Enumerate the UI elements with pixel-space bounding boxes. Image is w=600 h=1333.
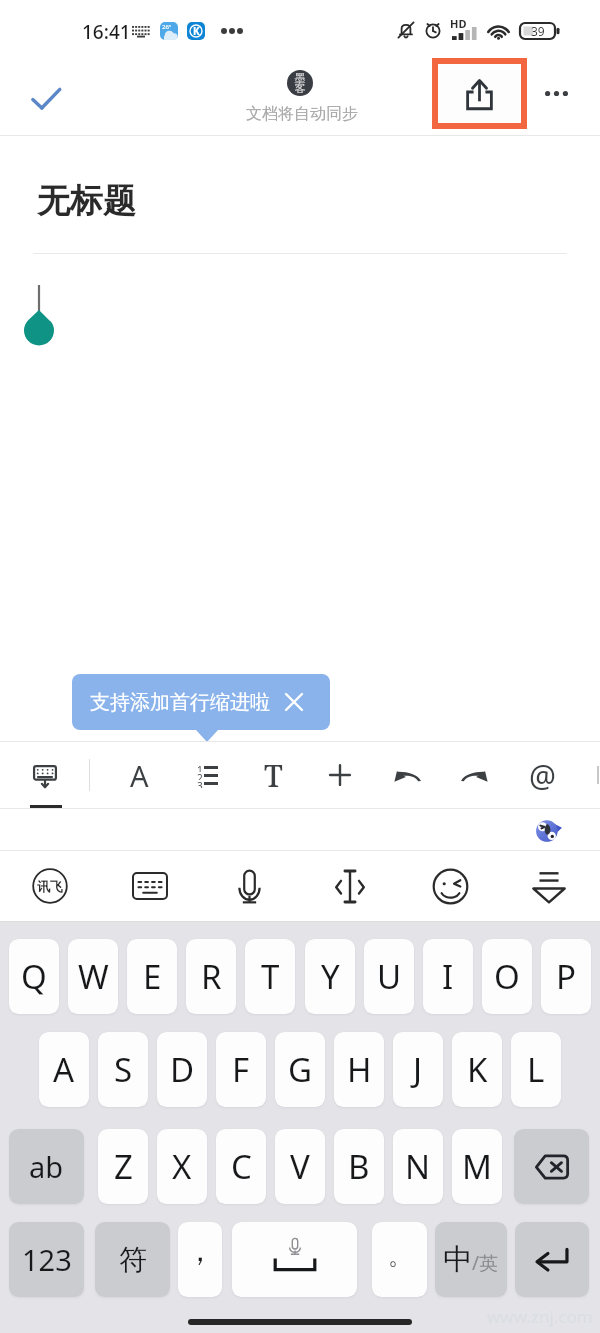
staticText: 16:41	[82, 19, 131, 45]
staticText: T	[261, 954, 280, 999]
staticText: 2	[197, 771, 203, 780]
button[interactable]: 。	[372, 1222, 427, 1297]
button[interactable]: ab	[9, 1129, 84, 1204]
staticText: O	[494, 954, 520, 999]
staticText: 3	[197, 779, 203, 788]
staticText: G	[288, 1047, 313, 1092]
button[interactable]: S	[98, 1032, 148, 1107]
staticText: 墨 客	[293, 71, 307, 95]
button[interactable]: T	[245, 939, 295, 1014]
staticText: ab	[29, 1147, 64, 1186]
button[interactable]: List	[174, 742, 240, 808]
button[interactable]: X	[157, 1129, 207, 1204]
button[interactable]: Hide	[515, 851, 583, 921]
button[interactable]: Font style	[106, 742, 172, 808]
staticText: ，	[185, 1232, 215, 1270]
button[interactable]: Space	[232, 1222, 357, 1297]
button[interactable]: C	[216, 1129, 266, 1204]
staticText: B	[348, 1144, 370, 1189]
staticText: 123	[22, 1240, 72, 1279]
button[interactable]: Enter	[515, 1222, 589, 1297]
staticText: P	[556, 954, 576, 999]
button[interactable]: Voice input	[215, 851, 283, 921]
staticText: A	[53, 1047, 75, 1092]
staticText: F	[232, 1047, 250, 1092]
button[interactable]: I	[423, 939, 473, 1014]
staticText: U	[377, 954, 402, 999]
staticText: 文档将自动同步	[246, 104, 358, 124]
button[interactable]: Account avatar	[287, 70, 313, 96]
staticText: K	[467, 1047, 488, 1092]
button[interactable]: More options	[534, 71, 578, 115]
staticText: S	[114, 1047, 133, 1092]
button[interactable]: Cursor	[316, 851, 384, 921]
staticText: N	[405, 1144, 431, 1189]
button[interactable]: E	[127, 939, 177, 1014]
staticText: 支持添加首行缩进啦	[90, 690, 270, 715]
button[interactable]: 123	[9, 1222, 84, 1297]
staticText: 26°	[162, 23, 172, 31]
button[interactable]: A	[39, 1032, 89, 1107]
staticText: 讯飞	[37, 878, 63, 894]
staticText: E	[143, 954, 162, 999]
staticText: @	[529, 755, 556, 796]
button[interactable]: Redo	[442, 742, 508, 808]
button[interactable]: 支持添加首行缩进啦	[72, 674, 330, 730]
button[interactable]: Hide keyboard	[12, 742, 78, 808]
staticText: 1	[197, 763, 203, 772]
button[interactable]: Keyboard	[116, 851, 184, 921]
button[interactable]: Done	[18, 71, 74, 127]
button[interactable]: M	[452, 1129, 502, 1204]
staticText: D	[170, 1047, 195, 1092]
staticText: L	[527, 1047, 545, 1092]
staticText: 39	[531, 23, 545, 39]
staticText: HD	[450, 16, 467, 31]
button[interactable]: L	[511, 1032, 561, 1107]
staticText: V	[290, 1144, 310, 1189]
button[interactable]: Y	[305, 939, 355, 1014]
button[interactable]: G	[275, 1032, 325, 1107]
staticText: R	[201, 954, 222, 999]
button[interactable]: K	[452, 1032, 502, 1107]
button[interactable]: H	[334, 1032, 384, 1107]
staticText: M	[462, 1144, 492, 1189]
staticText: 无标题	[37, 180, 136, 222]
button[interactable]: Q	[9, 939, 59, 1014]
staticText: H	[347, 1047, 372, 1092]
button[interactable]: V	[275, 1129, 325, 1204]
button[interactable]: W	[68, 939, 118, 1014]
button[interactable]: N	[393, 1129, 443, 1204]
staticText: 符	[119, 1242, 147, 1277]
button[interactable]: Input method	[16, 851, 84, 921]
button[interactable]: Z	[98, 1129, 148, 1204]
button[interactable]: R	[186, 939, 236, 1014]
button[interactable]: Backspace	[514, 1129, 589, 1204]
button[interactable]: D	[157, 1032, 207, 1107]
button[interactable]: O	[482, 939, 532, 1014]
button[interactable]: Undo	[374, 742, 440, 808]
button[interactable]: J	[393, 1032, 443, 1107]
staticText: www.znj.com	[487, 1305, 593, 1328]
staticText: X	[172, 1144, 192, 1189]
button[interactable]: U	[364, 939, 414, 1014]
button[interactable]: Insert	[307, 742, 373, 808]
button[interactable]: P	[541, 939, 591, 1014]
button[interactable]: Share	[438, 64, 521, 123]
staticText: W	[78, 954, 109, 999]
button[interactable]: ，	[178, 1222, 222, 1297]
button[interactable]: B	[334, 1129, 384, 1204]
staticText: C	[231, 1144, 252, 1189]
button[interactable]: 符	[95, 1222, 170, 1297]
staticText: K	[193, 24, 200, 38]
staticText: /英	[472, 1250, 499, 1276]
staticText: Y	[321, 954, 340, 999]
staticText: T	[264, 755, 283, 796]
button[interactable]: Text format	[240, 742, 306, 808]
button[interactable]: F	[216, 1032, 266, 1107]
button[interactable]: Chinese English toggle	[435, 1222, 507, 1297]
staticText: Q	[21, 954, 47, 999]
button[interactable]: Emoji	[416, 851, 484, 921]
staticText: 。	[388, 1241, 412, 1271]
button[interactable]: Mention	[509, 742, 575, 808]
staticText: Z	[114, 1144, 133, 1189]
